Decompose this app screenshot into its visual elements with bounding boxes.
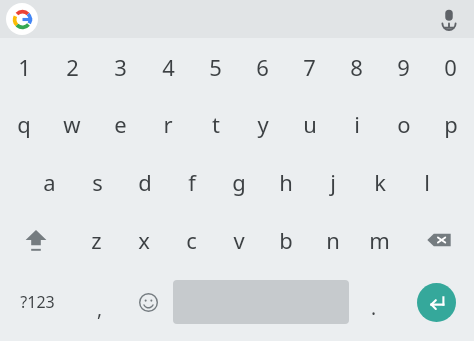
button[interactable]: q <box>0 95 48 153</box>
button[interactable]: t <box>192 95 239 153</box>
button[interactable]: x <box>120 211 168 269</box>
staticText: 1 <box>18 52 31 82</box>
button[interactable]: Emoji <box>124 269 173 335</box>
staticText: b <box>279 225 293 255</box>
button[interactable]: i <box>333 95 380 153</box>
staticText: 7 <box>303 52 316 82</box>
button[interactable]: , <box>75 269 124 335</box>
button[interactable]: a <box>25 153 73 211</box>
staticText: 5 <box>209 52 222 82</box>
staticText: k <box>374 167 386 197</box>
staticText: d <box>138 167 152 197</box>
staticText: o <box>397 109 411 139</box>
button[interactable]: 6 <box>239 38 286 95</box>
button[interactable]: z <box>72 211 120 269</box>
button[interactable]: y <box>239 95 286 153</box>
button[interactable]: e <box>96 95 144 153</box>
button[interactable]: d <box>121 153 168 211</box>
staticText: q <box>17 109 31 139</box>
button[interactable]: w <box>48 95 96 153</box>
staticText: u <box>303 109 317 139</box>
button[interactable]: b <box>262 211 309 269</box>
staticText: 0 <box>444 52 457 82</box>
button[interactable]: 1 <box>0 38 48 95</box>
staticText: , <box>97 296 103 322</box>
staticText: f <box>188 167 196 197</box>
staticText: . <box>371 295 377 321</box>
button[interactable]: 9 <box>380 38 427 95</box>
button[interactable]: 4 <box>144 38 192 95</box>
button[interactable]: 2 <box>48 38 96 95</box>
staticText: t <box>212 109 220 139</box>
staticText: 4 <box>162 52 175 82</box>
staticText: h <box>279 167 293 197</box>
staticText: c <box>186 225 197 255</box>
staticText: ?123 <box>20 291 55 313</box>
staticText: x <box>138 225 150 255</box>
staticText: 8 <box>350 52 363 82</box>
staticText: 3 <box>114 52 127 82</box>
staticText: m <box>369 225 390 255</box>
staticText: y <box>257 109 269 139</box>
button[interactable]: n <box>309 211 356 269</box>
staticText: r <box>163 109 173 139</box>
button[interactable]: l <box>403 153 450 211</box>
button[interactable]: k <box>356 153 403 211</box>
staticText: g <box>232 167 246 197</box>
staticText: p <box>444 109 458 139</box>
button[interactable]: m <box>356 211 403 269</box>
button[interactable]: 7 <box>286 38 333 95</box>
staticText: 2 <box>66 52 79 82</box>
staticText: i <box>354 109 360 139</box>
button[interactable]: . <box>349 269 398 335</box>
staticText: e <box>114 109 127 139</box>
button[interactable]: 3 <box>96 38 144 95</box>
button[interactable]: h <box>262 153 309 211</box>
button[interactable]: 5 <box>192 38 239 95</box>
button[interactable]: s <box>73 153 121 211</box>
button[interactable]: f <box>168 153 215 211</box>
button[interactable]: Enter <box>417 283 456 322</box>
button[interactable]: Shift <box>0 211 72 269</box>
button[interactable]: p <box>427 95 474 153</box>
button[interactable]: u <box>286 95 333 153</box>
staticText: l <box>424 167 430 197</box>
button[interactable]: o <box>380 95 427 153</box>
button[interactable]: j <box>309 153 356 211</box>
staticText: w <box>63 109 81 139</box>
staticText: z <box>91 225 102 255</box>
staticText: v <box>233 225 245 255</box>
staticText: n <box>326 225 340 255</box>
button[interactable]: ?123 <box>0 269 75 335</box>
button[interactable]: Google <box>6 3 38 35</box>
button[interactable]: g <box>215 153 262 211</box>
staticText: s <box>92 167 103 197</box>
staticText: 6 <box>256 52 269 82</box>
staticText: j <box>330 167 336 197</box>
button[interactable]: r <box>144 95 192 153</box>
staticText: 9 <box>397 52 410 82</box>
button[interactable]: c <box>168 211 215 269</box>
button[interactable]: Backspace <box>403 211 474 269</box>
button[interactable]: v <box>215 211 262 269</box>
button[interactable]: 0 <box>427 38 474 95</box>
button[interactable]: Voice input <box>432 2 466 36</box>
button[interactable]: 8 <box>333 38 380 95</box>
staticText: a <box>43 167 56 197</box>
